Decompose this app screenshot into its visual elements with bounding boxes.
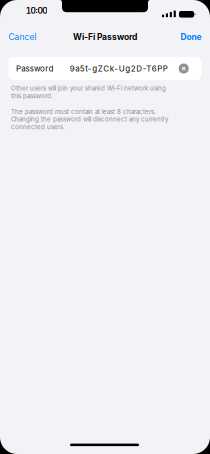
staticText: connected users. [11,123,65,131]
staticText: this password. [11,92,53,100]
staticText: Done [180,32,201,42]
staticText: Cancel [8,32,36,42]
button[interactable]: Cancel [8,32,36,42]
staticText: Changing the password will disconnect an… [11,116,168,123]
staticText: 9a5t-gZCk-Ug2D-T6PP [70,64,168,73]
staticText: 10:00 [26,6,47,16]
staticText: Other users will join your shared Wi-Fi … [11,84,166,92]
staticText: Wi-Fi Password [73,32,137,42]
button[interactable]: Clear text [179,63,189,73]
staticText: Password [16,64,53,73]
staticText: The password must contain at least 8 cha… [11,108,156,115]
button[interactable]: Done [180,32,201,42]
